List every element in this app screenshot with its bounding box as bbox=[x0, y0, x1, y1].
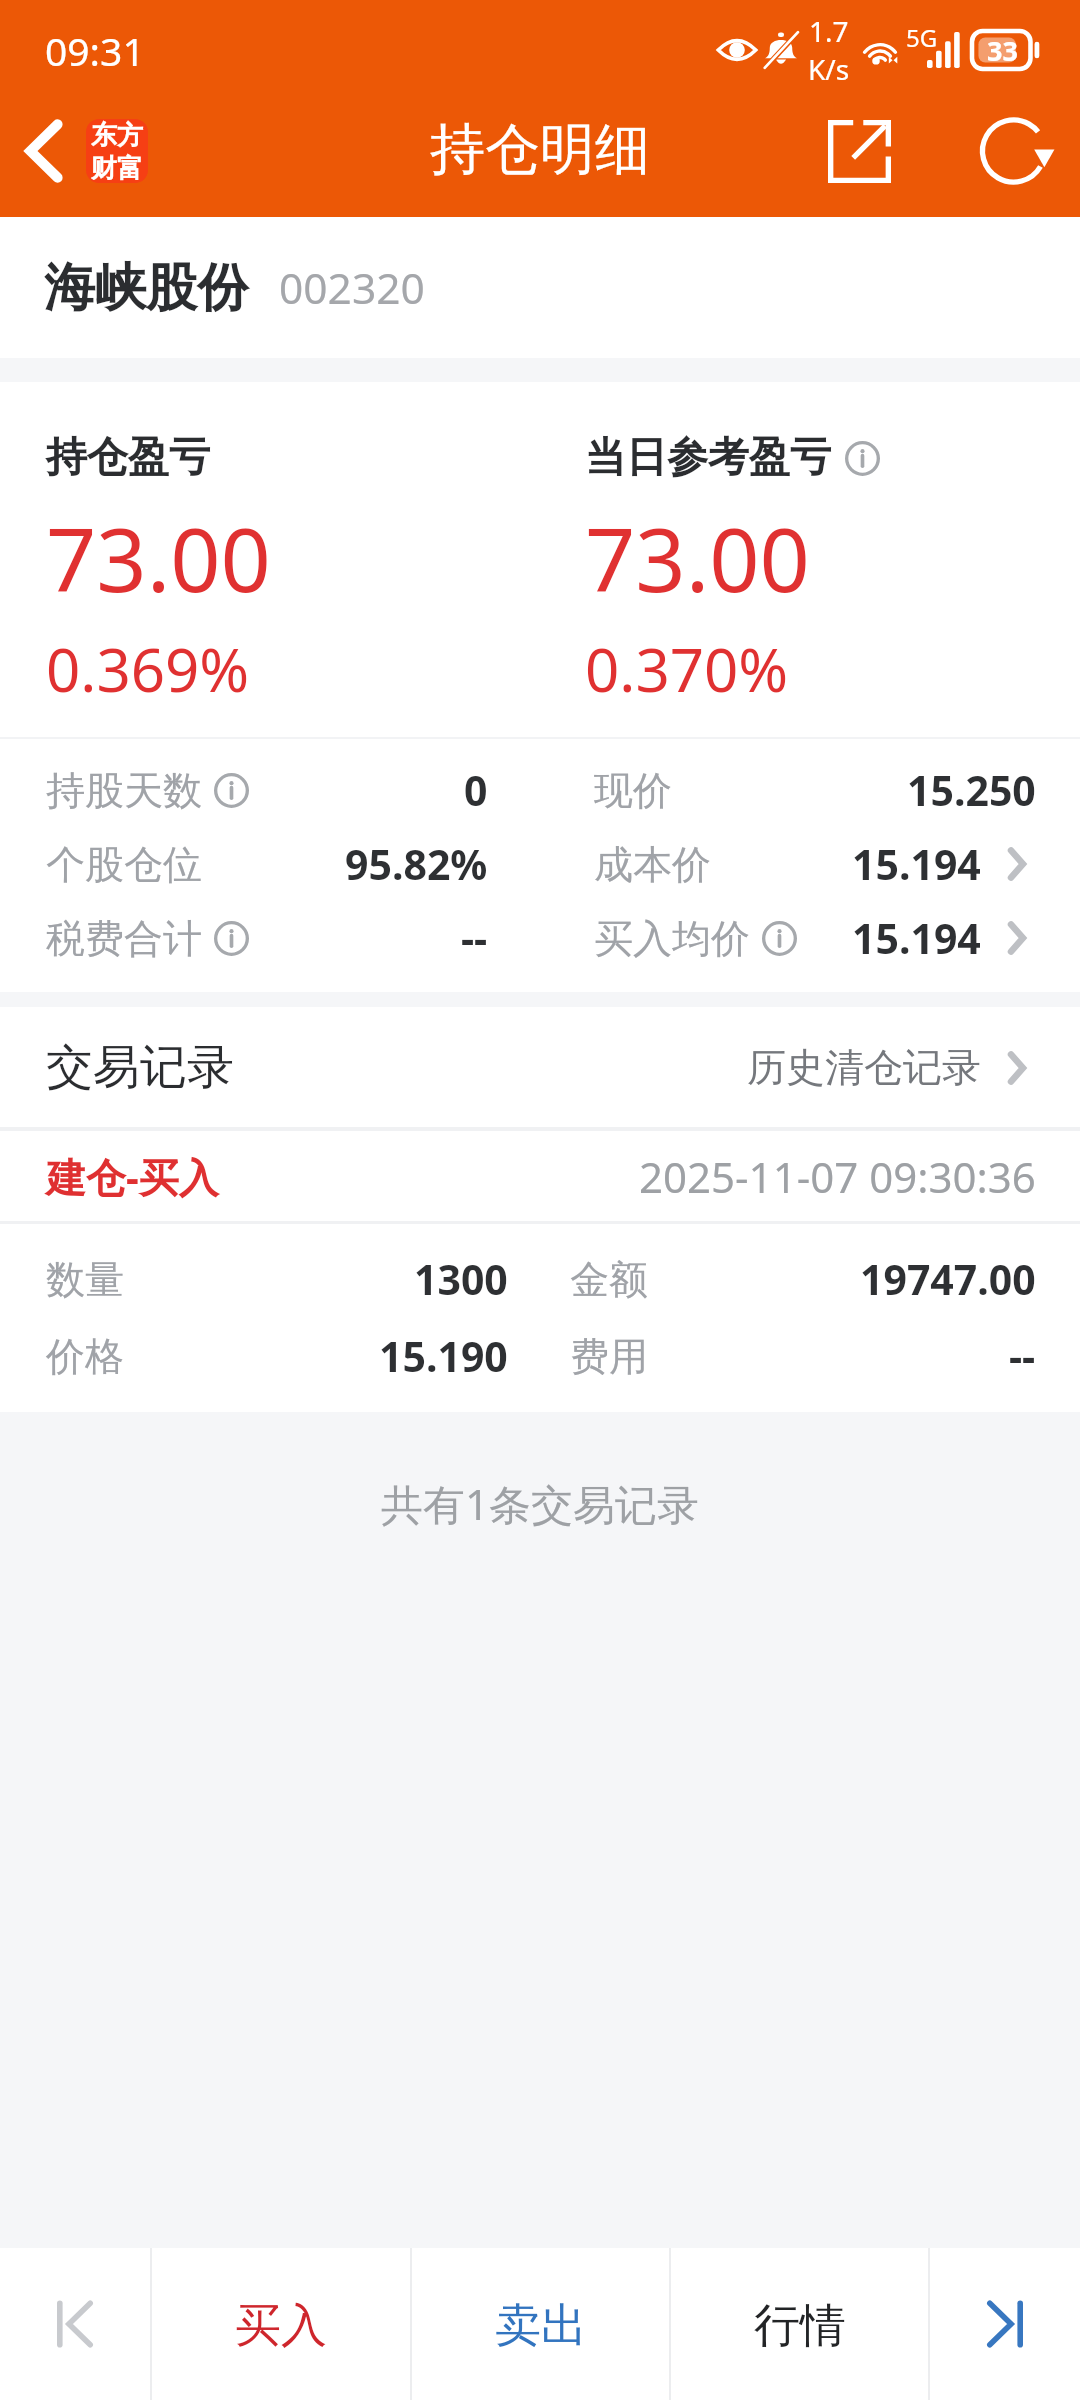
staticText: 个股仓位 bbox=[46, 840, 202, 889]
staticText: 持股天数 bbox=[46, 766, 202, 815]
staticText: 建仓-买入 bbox=[46, 1149, 219, 1204]
staticText: 行情 bbox=[754, 2297, 846, 2355]
staticText: 002320 bbox=[279, 259, 425, 317]
button[interactable]: Refresh bbox=[972, 101, 1064, 201]
button[interactable]: Previous bbox=[0, 2248, 150, 2400]
staticText: 73.00 bbox=[46, 498, 271, 618]
button[interactable]: 持股天数 bbox=[0, 753, 542, 827]
button[interactable]: 历史清仓记录 bbox=[747, 1043, 1027, 1092]
staticText: 持仓盈亏 bbox=[46, 432, 210, 484]
staticText: 现价 bbox=[594, 766, 672, 815]
staticText: 费用 bbox=[570, 1332, 648, 1381]
button[interactable]: Share bbox=[813, 101, 905, 201]
staticText: 1.7 bbox=[809, 12, 849, 50]
button[interactable]: 成本价 bbox=[542, 827, 1080, 901]
staticText: 09:31 bbox=[45, 24, 145, 77]
staticText: 税费合计 bbox=[46, 914, 202, 963]
staticText: -- bbox=[1009, 1328, 1036, 1384]
staticText: 0 bbox=[464, 762, 488, 818]
staticText: 持仓明细 bbox=[430, 115, 650, 184]
staticText: 15.194 bbox=[852, 836, 981, 892]
button[interactable]: 个股仓位 bbox=[0, 827, 542, 901]
staticText: K/s bbox=[808, 50, 850, 88]
button[interactable]: East Money logo bbox=[86, 119, 148, 183]
staticText: 15.250 bbox=[907, 762, 1036, 818]
button[interactable]: 海峡股份 bbox=[0, 217, 1080, 358]
staticText: 33 bbox=[987, 32, 1018, 69]
staticText: 15.190 bbox=[379, 1328, 508, 1384]
staticText: 共有1条交易记录 bbox=[381, 1475, 700, 1532]
staticText: 卖出 bbox=[495, 2297, 587, 2355]
staticText: 5G bbox=[906, 21, 938, 54]
staticText: 交易记录 bbox=[46, 1038, 234, 1097]
staticText: 15.194 bbox=[852, 910, 981, 966]
staticText: 金额 bbox=[570, 1255, 648, 1304]
staticText: 成本价 bbox=[594, 840, 711, 889]
button[interactable]: Back bbox=[0, 101, 88, 201]
staticText: 1300 bbox=[414, 1251, 508, 1307]
staticText: 当日参考盈亏 bbox=[585, 432, 831, 484]
staticText: 0.370% bbox=[585, 628, 789, 710]
staticText: 财富 bbox=[91, 152, 143, 183]
staticText: 东方 bbox=[91, 119, 143, 152]
button[interactable]: Next bbox=[930, 2248, 1080, 2400]
staticText: 0.369% bbox=[46, 628, 250, 710]
staticText: 2025-11-07 09:30:36 bbox=[639, 1148, 1036, 1205]
button[interactable]: 行情 bbox=[671, 2248, 928, 2400]
staticText: 买入均价 bbox=[594, 914, 750, 963]
staticText: 19747.00 bbox=[860, 1251, 1036, 1307]
staticText: 数量 bbox=[46, 1255, 124, 1304]
staticText: 海峡股份 bbox=[44, 256, 248, 320]
button[interactable]: 税费合计 bbox=[0, 901, 542, 975]
button[interactable]: 买入均价 bbox=[542, 901, 1080, 975]
staticText: 价格 bbox=[46, 1332, 124, 1381]
staticText: 买入 bbox=[235, 2297, 327, 2355]
button[interactable]: 买入 bbox=[152, 2248, 410, 2400]
staticText: 历史清仓记录 bbox=[747, 1043, 981, 1092]
staticText: -- bbox=[461, 910, 488, 966]
staticText: 73.00 bbox=[585, 498, 810, 618]
staticText: 95.82% bbox=[345, 836, 488, 892]
button[interactable]: 现价 bbox=[542, 753, 1080, 827]
button[interactable]: 卖出 bbox=[412, 2248, 669, 2400]
